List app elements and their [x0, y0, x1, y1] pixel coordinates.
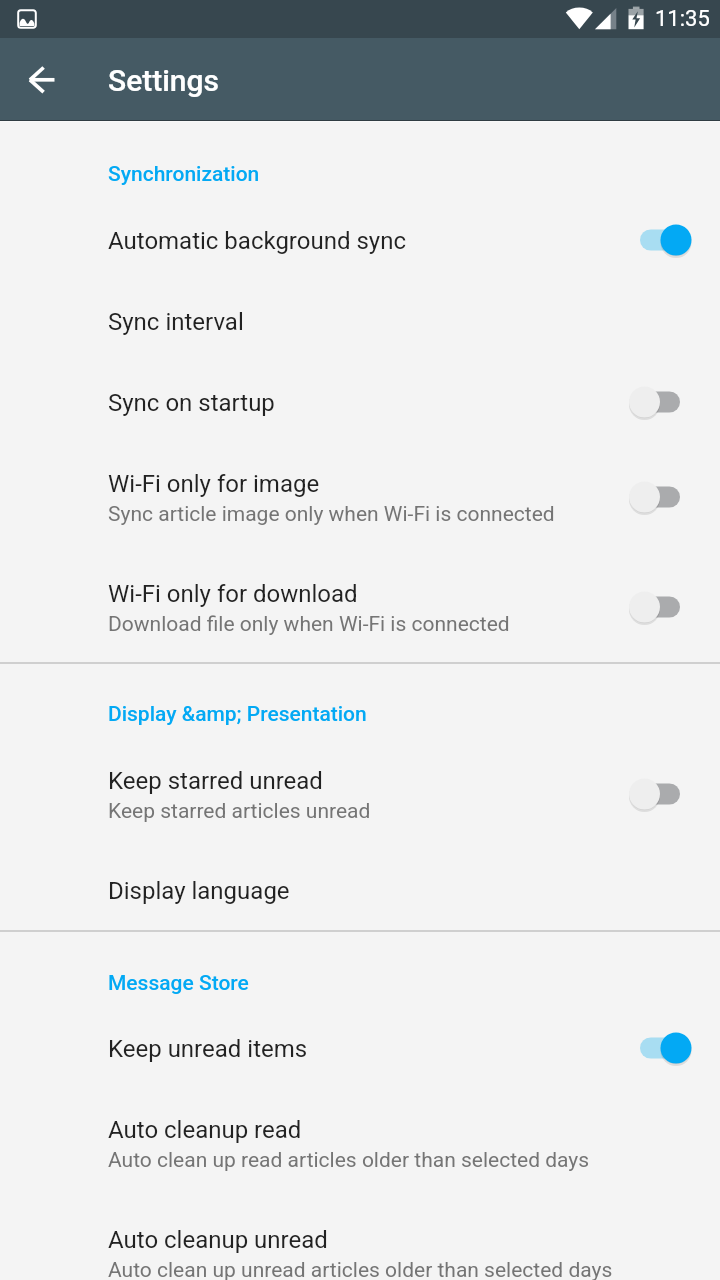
staticText: Synchronization	[108, 162, 260, 187]
staticText: 11:35	[655, 6, 710, 32]
button[interactable]: On	[629, 218, 691, 262]
button[interactable]: Automatic background sync	[0, 199, 720, 280]
staticText: Wi-Fi only for image	[108, 470, 320, 498]
button[interactable]: Auto cleanup unread	[0, 1198, 720, 1280]
button[interactable]: On	[629, 1026, 691, 1070]
button[interactable]: Off	[629, 585, 691, 629]
button[interactable]: Off	[629, 772, 691, 816]
button[interactable]: Keep starred unread	[0, 739, 720, 849]
staticText: Sync on startup	[108, 389, 275, 417]
staticText: Sync interval	[108, 308, 244, 336]
button[interactable]: Off	[629, 475, 691, 519]
staticText: Keep starred unread	[108, 767, 323, 795]
button[interactable]: Auto cleanup read	[0, 1088, 720, 1198]
staticText: Auto clean up unread articles older than…	[108, 1258, 613, 1280]
button[interactable]: Navigate up	[18, 56, 66, 104]
staticText: Automatic background sync	[108, 227, 406, 255]
button[interactable]: Wi-Fi only for download	[0, 552, 720, 662]
staticText: Auto cleanup unread	[108, 1226, 328, 1254]
staticText: Display language	[108, 877, 290, 905]
staticText: Wi-Fi only for download	[108, 580, 358, 608]
button[interactable]: Display language	[0, 849, 720, 930]
button[interactable]: Wi-Fi only for image	[0, 442, 720, 552]
staticText: Download file only when Wi-Fi is connect…	[108, 612, 510, 637]
button[interactable]: Off	[629, 380, 691, 424]
staticText: Settings	[108, 63, 220, 98]
button[interactable]: Sync on startup	[0, 361, 720, 442]
staticText: Keep unread items	[108, 1035, 308, 1063]
staticText: Display &amp; Presentation	[108, 702, 367, 727]
staticText: Auto clean up read articles older than s…	[108, 1148, 590, 1173]
button[interactable]: Keep unread items	[0, 1007, 720, 1088]
button[interactable]: Sync interval	[0, 280, 720, 361]
staticText: Message Store	[108, 971, 249, 996]
staticText: Keep starred articles unread	[108, 799, 371, 824]
staticText: Sync article image only when Wi-Fi is co…	[108, 502, 555, 527]
staticText: Auto cleanup read	[108, 1116, 302, 1144]
